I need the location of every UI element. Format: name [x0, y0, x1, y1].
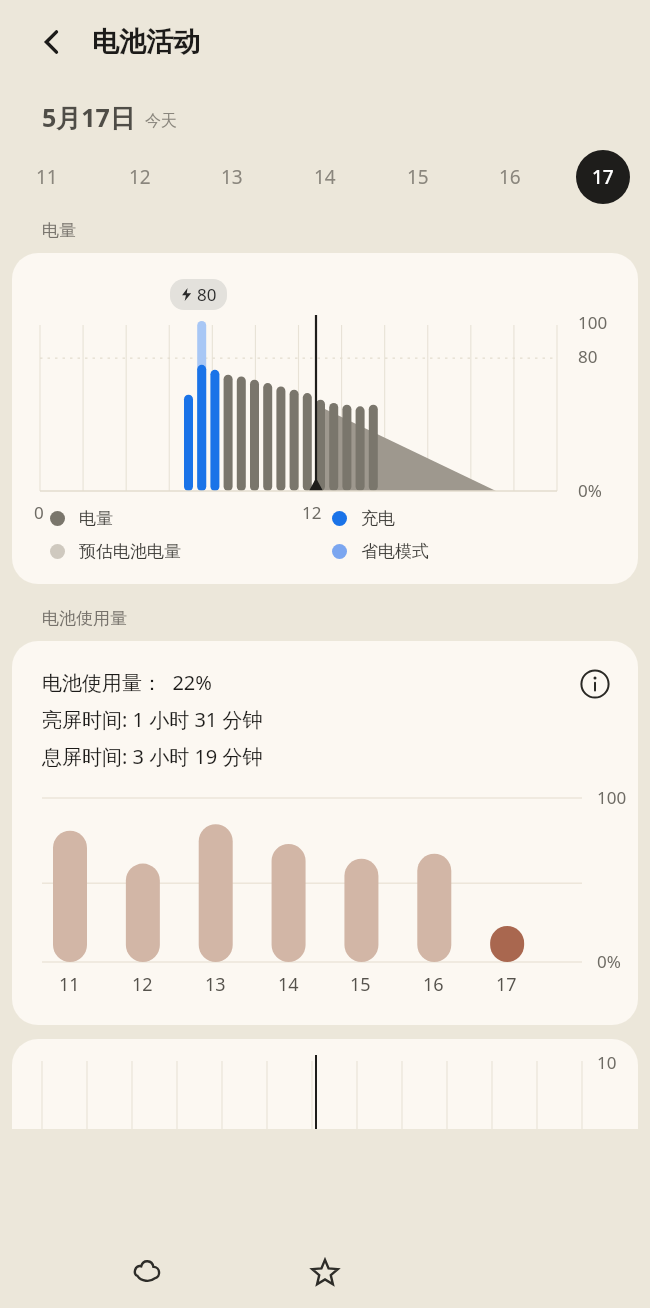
button[interactable]: 充电: [332, 508, 614, 529]
button[interactable]: 预估电池电量: [50, 541, 332, 562]
staticText: 充电: [361, 508, 395, 529]
staticText: 省电模式: [361, 541, 429, 562]
staticText: 预估电池电量: [79, 541, 181, 562]
staticText: 息屏时间: 3 小时 19 分钟: [42, 743, 263, 770]
staticText: 13: [221, 164, 243, 190]
button[interactable]: 17: [576, 150, 630, 204]
staticText: 80: [578, 345, 598, 368]
staticText: 15: [350, 972, 371, 997]
button[interactable]: Info: [574, 663, 616, 705]
button[interactable]: Back: [28, 18, 76, 66]
staticText: 12: [129, 164, 151, 190]
staticText: 13: [205, 972, 226, 997]
button[interactable]: 电池使用量： 22%: [12, 641, 638, 1025]
staticText: 100: [597, 786, 627, 809]
staticText: 14: [278, 972, 299, 997]
staticText: 亮屏时间: 1 小时 31 分钟: [42, 706, 263, 733]
staticText: 今天: [145, 111, 177, 131]
staticText: 100: [578, 311, 608, 334]
button[interactable]: 15: [391, 150, 445, 204]
staticText: 电池活动: [92, 25, 200, 59]
staticText: 0: [34, 501, 44, 524]
button[interactable]: Cloud: [115, 1240, 179, 1304]
button[interactable]: 13: [205, 150, 259, 204]
staticText: 0%: [597, 950, 621, 973]
staticText: 16: [499, 164, 521, 190]
staticText: 12: [302, 501, 322, 524]
staticText: 16: [423, 972, 444, 997]
button[interactable]: 10: [12, 1039, 638, 1129]
staticText: 10: [597, 1051, 617, 1074]
staticText: 电池使用量: [42, 608, 127, 629]
staticText: 5月17日: [42, 100, 135, 134]
staticText: 电量: [79, 508, 113, 529]
button[interactable]: 省电模式: [332, 541, 614, 562]
staticText: 14: [314, 164, 336, 190]
button[interactable]: Favorites: [293, 1240, 357, 1304]
staticText: 11: [59, 972, 80, 997]
button[interactable]: 电量: [50, 508, 332, 529]
staticText: 80: [197, 283, 217, 306]
button[interactable]: 16: [483, 150, 537, 204]
button[interactable]: 100: [12, 253, 638, 584]
button[interactable]: 12: [113, 150, 167, 204]
staticText: 17: [592, 164, 614, 190]
staticText: 17: [496, 972, 517, 997]
button[interactable]: 14: [298, 150, 352, 204]
staticText: 0%: [578, 479, 602, 502]
staticText: 电量: [42, 220, 76, 241]
staticText: 12: [132, 972, 153, 997]
staticText: 电池使用量： 22%: [42, 669, 212, 696]
staticText: 15: [407, 164, 429, 190]
staticText: 11: [36, 164, 58, 190]
button[interactable]: 11: [20, 150, 74, 204]
